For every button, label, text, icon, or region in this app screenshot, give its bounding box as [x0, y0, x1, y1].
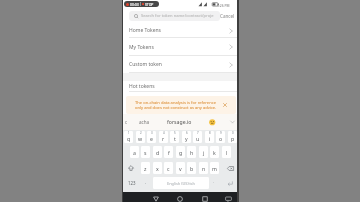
staticText: STOP: [145, 2, 154, 7]
staticText: 2: [140, 131, 142, 135]
button[interactable]: v: [176, 162, 185, 174]
staticText: o: [219, 135, 223, 142]
staticText: k: [213, 149, 216, 156]
button[interactable]: forsage.io: [167, 114, 192, 130]
button[interactable]: [199, 195, 210, 202]
button[interactable]: a: [130, 146, 139, 158]
staticText: q: [127, 135, 131, 142]
button[interactable]: k: [210, 146, 219, 158]
button[interactable]: My Tokens: [123, 38, 237, 56]
staticText: w: [138, 135, 143, 142]
staticText: d: [156, 149, 160, 156]
button[interactable]: Cancel: [220, 9, 235, 23]
button[interactable]: 4: [159, 131, 168, 143]
button[interactable]: English (US)·ish: [153, 177, 209, 189]
button[interactable]: f: [164, 146, 173, 158]
staticText: Home Tokens: [129, 27, 161, 34]
button[interactable]: s: [141, 146, 150, 158]
staticText: s: [144, 149, 147, 156]
button[interactable]: 123: [124, 177, 140, 189]
staticText: forsage.io: [167, 119, 192, 126]
staticText: .: [213, 179, 215, 184]
staticText: a: [133, 149, 136, 156]
staticText: 4: [163, 131, 165, 135]
button[interactable]: j: [199, 146, 208, 158]
staticText: 8: [209, 131, 211, 135]
button[interactable]: 3: [147, 131, 156, 143]
staticText: i: [209, 135, 211, 142]
button[interactable]: 00:03: [124, 1, 159, 7]
button[interactable]: 8: [205, 131, 214, 143]
staticText: m: [212, 165, 217, 172]
staticText: Cancel: [220, 13, 235, 19]
staticText: c: [167, 165, 170, 172]
button[interactable]: l: [222, 146, 231, 158]
button[interactable]: g: [176, 146, 185, 158]
staticText: Custom token: [129, 61, 162, 68]
button[interactable]: Home Tokens: [123, 23, 237, 38]
staticText: English (US)·ish: [167, 181, 195, 186]
button[interactable]: 6: [182, 131, 191, 143]
button[interactable]: x: [153, 162, 162, 174]
button[interactable]: [209, 119, 216, 126]
button[interactable]: [150, 195, 161, 202]
button[interactable]: Hot tokens: [123, 81, 237, 92]
button[interactable]: h: [187, 146, 196, 158]
staticText: 1: [128, 131, 130, 135]
staticText: e: [150, 135, 153, 142]
button[interactable]: 0: [228, 131, 237, 143]
button[interactable]: z: [141, 162, 150, 174]
staticText: u: [196, 135, 200, 142]
staticText: Search for token name/contract/proje: [141, 13, 214, 19]
staticText: My Tokens: [129, 44, 154, 51]
button[interactable]: [174, 195, 185, 202]
button[interactable]: acha: [139, 114, 150, 130]
staticText: 00:03: [130, 2, 139, 7]
staticText: r: [162, 135, 165, 142]
button[interactable]: 2: [136, 131, 145, 143]
staticText: p: [231, 135, 235, 142]
staticText: l: [226, 149, 228, 156]
staticText: ,: [145, 179, 147, 184]
button[interactable]: d: [153, 146, 162, 158]
staticText: 6: [186, 131, 188, 135]
button[interactable]: m: [210, 162, 219, 174]
button[interactable]: Custom token: [123, 56, 237, 73]
button[interactable]: Search for token name/contract/proje: [129, 11, 220, 21]
staticText: acha: [139, 119, 150, 125]
staticText: n: [202, 165, 206, 172]
button[interactable]: [124, 162, 138, 174]
staticText: Hot tokens: [129, 83, 155, 90]
staticText: 3:26 PM: [217, 3, 230, 7]
staticText: z: [144, 165, 147, 172]
button[interactable]: 9: [216, 131, 225, 143]
button[interactable]: 5: [170, 131, 179, 143]
staticText: j: [203, 149, 205, 156]
staticText: t: [174, 135, 176, 142]
button[interactable]: 1: [124, 131, 133, 143]
staticText: b: [190, 165, 194, 172]
button[interactable]: b: [187, 162, 196, 174]
button[interactable]: n: [199, 162, 208, 174]
staticText: f: [168, 149, 170, 156]
button[interactable]: c: [164, 162, 173, 174]
staticText: c: [125, 119, 128, 125]
staticText: 0: [232, 131, 234, 135]
staticText: y: [185, 135, 188, 142]
staticText: 5: [174, 131, 176, 135]
staticText: 123: [128, 180, 136, 186]
button[interactable]: c: [125, 114, 128, 130]
button[interactable]: [222, 102, 228, 108]
button[interactable]: 7: [193, 131, 202, 143]
staticText: 7: [197, 131, 199, 135]
staticText: h: [190, 149, 194, 156]
staticText: x: [156, 165, 159, 172]
button[interactable]: [223, 162, 237, 174]
staticText: v: [179, 165, 182, 172]
button[interactable]: [223, 195, 234, 202]
staticText: The on-chain data analysis is for refere…: [135, 100, 217, 110]
staticText: 9: [220, 131, 222, 135]
staticText: 3: [151, 131, 153, 135]
staticText: g: [179, 149, 183, 156]
